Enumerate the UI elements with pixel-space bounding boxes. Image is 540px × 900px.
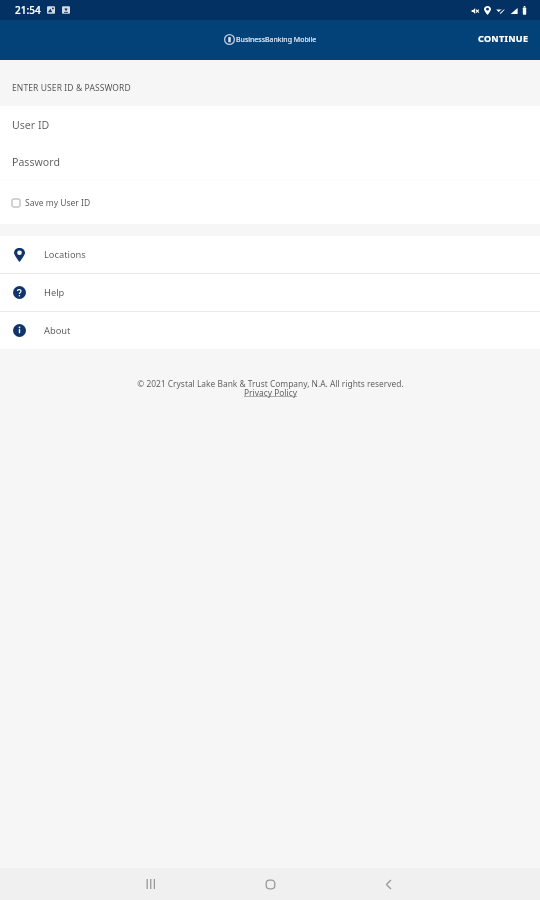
staticText: Password <box>12 155 60 169</box>
staticText: ENTER USER ID & PASSWORD <box>12 82 131 94</box>
staticText: 21:54 <box>15 3 41 17</box>
button[interactable]: Back <box>366 868 410 900</box>
staticText: BusinessBanking Mobile <box>236 35 317 45</box>
staticText: Privacy Policy <box>244 387 297 398</box>
staticText: Locations <box>44 248 86 261</box>
staticText: CONTINUE <box>478 32 529 44</box>
button[interactable]: CONTINUE <box>467 22 540 54</box>
staticText: © 2021 Crystal Lake Bank & Trust Company… <box>137 378 404 389</box>
button[interactable]: Recent apps <box>128 868 172 900</box>
button[interactable]: Help <box>0 274 540 311</box>
button[interactable]: Save my User ID <box>0 181 540 224</box>
button[interactable]: About <box>0 312 540 349</box>
button[interactable]: Privacy Policy <box>244 387 297 398</box>
button[interactable]: Home <box>248 868 292 900</box>
button[interactable]: User ID <box>0 106 540 143</box>
button[interactable]: Locations <box>0 236 540 273</box>
staticText: Help <box>44 286 65 299</box>
staticText: Save my User ID <box>25 197 91 209</box>
staticText: About <box>44 324 71 337</box>
button[interactable]: Password <box>0 143 540 180</box>
staticText: User ID <box>12 118 50 132</box>
